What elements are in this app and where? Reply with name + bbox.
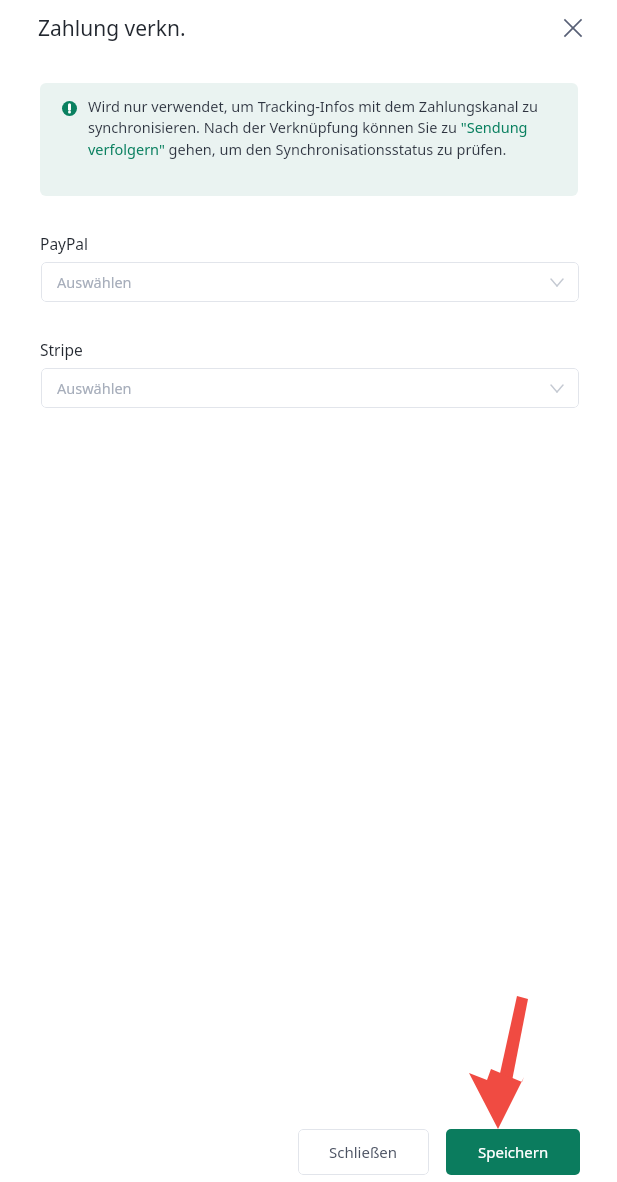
button[interactable]: Close — [555, 10, 591, 46]
staticText: Speichern — [478, 1142, 549, 1162]
button[interactable]: Auswählen — [41, 368, 579, 408]
staticText: Stripe — [40, 339, 83, 360]
staticText: Schließen — [329, 1142, 398, 1162]
button[interactable]: Speichern — [446, 1129, 580, 1175]
staticText: Auswählen — [57, 378, 132, 398]
staticText: Zahlung verkn. — [38, 14, 186, 43]
staticText: PayPal — [40, 233, 89, 254]
staticText: Wird nur verwendet, um Tracking-Infos mi… — [88, 96, 556, 160]
button[interactable]: Schließen — [298, 1129, 429, 1175]
staticText: Auswählen — [57, 272, 132, 292]
button[interactable]: Auswählen — [41, 262, 579, 302]
